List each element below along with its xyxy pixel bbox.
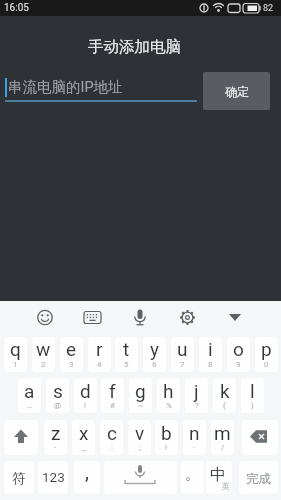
button[interactable] (242, 420, 278, 455)
staticText: 0 (264, 360, 269, 369)
staticText: q (10, 338, 21, 360)
staticText: 16:05 (4, 2, 29, 14)
staticText: 中 (210, 465, 226, 485)
staticText: y (150, 338, 159, 360)
staticText: ( (223, 401, 226, 410)
staticText: 7 (180, 360, 185, 369)
staticText: ! (165, 443, 168, 452)
staticText: ) (251, 401, 254, 410)
staticText: p (261, 338, 272, 360)
button[interactable]: 确定 (203, 72, 270, 110)
staticText: : (111, 443, 113, 452)
button[interactable]: 完成 (239, 461, 278, 494)
staticText: f (109, 380, 116, 402)
button[interactable]: x (72, 420, 95, 455)
staticText: 。 (185, 465, 200, 484)
button[interactable]: q (4, 337, 27, 372)
staticText: i (208, 338, 213, 360)
staticText: c (107, 422, 117, 444)
button[interactable] (31, 302, 59, 332)
staticText: # (110, 401, 115, 410)
staticText: 9 (236, 360, 241, 369)
button[interactable] (4, 420, 38, 455)
staticText: 完成 (246, 471, 271, 487)
button[interactable]: o (227, 337, 250, 372)
staticText: j (194, 380, 199, 402)
staticText: e (66, 338, 77, 360)
button[interactable]: m (211, 420, 234, 455)
button[interactable] (221, 302, 249, 332)
staticText: 8 (208, 360, 213, 369)
staticText: 5 (124, 360, 129, 369)
staticText: _ (82, 443, 86, 452)
staticText: z (51, 422, 61, 444)
button[interactable]: i (199, 337, 222, 372)
staticText: / (221, 443, 225, 452)
staticText: % (166, 401, 172, 410)
staticText: a (24, 380, 35, 402)
button[interactable]: t (115, 337, 138, 372)
staticText: u (177, 338, 188, 360)
button[interactable]: 123 (38, 461, 68, 494)
button[interactable] (126, 302, 154, 332)
staticText: t (123, 338, 130, 360)
button[interactable]: e (60, 337, 83, 372)
staticText: x (79, 422, 89, 444)
staticText: r (96, 338, 103, 360)
button[interactable]: h (157, 378, 180, 413)
staticText: h (163, 380, 174, 402)
staticText: m (214, 422, 231, 444)
button[interactable]: j (185, 378, 208, 413)
staticText: l (250, 380, 255, 402)
button[interactable]: c (100, 420, 123, 455)
button[interactable] (79, 302, 107, 332)
button[interactable]: k (213, 378, 236, 413)
staticText: d (80, 380, 91, 402)
button[interactable]: d (74, 378, 97, 413)
button[interactable]: 符 (4, 461, 34, 494)
staticText: 4 (97, 360, 102, 369)
staticText: w (36, 338, 51, 360)
button[interactable]: , (74, 461, 100, 494)
button[interactable]: f (101, 378, 124, 413)
button[interactable]: a (18, 378, 41, 413)
button[interactable]: u (171, 337, 194, 372)
staticText: … (27, 401, 33, 410)
staticText: o (233, 338, 244, 360)
staticText: ~ (138, 401, 144, 410)
button[interactable] (174, 302, 202, 332)
button[interactable]: s (46, 378, 69, 413)
button[interactable]: z (44, 420, 67, 455)
staticText: · (193, 443, 196, 452)
staticText: v (135, 422, 145, 444)
button[interactable]: b (155, 420, 178, 455)
staticText: 123 (42, 469, 65, 485)
staticText: b (161, 422, 172, 444)
staticText: ? (195, 401, 199, 410)
staticText: 英 (222, 481, 230, 491)
button[interactable]: w (32, 337, 55, 372)
button[interactable]: y (143, 337, 166, 372)
button[interactable]: l (241, 378, 264, 413)
staticText: k (220, 380, 230, 402)
button[interactable]: 中 (206, 461, 232, 494)
staticText: 串流电脑的IP地址 (8, 78, 123, 96)
staticText: g (135, 380, 146, 402)
staticText: @ (54, 401, 62, 410)
staticText: ; (139, 443, 141, 452)
button[interactable]: g (129, 378, 152, 413)
staticText: ! (84, 401, 87, 410)
staticText: 2 (41, 360, 46, 369)
button[interactable] (104, 461, 177, 494)
staticText: 82 (263, 3, 274, 14)
staticText: 手动添加电脑 (88, 37, 181, 56)
staticText: n (189, 422, 200, 444)
button[interactable]: p (255, 337, 278, 372)
staticText: 6 (152, 360, 157, 369)
staticText: 1 (13, 360, 18, 369)
button[interactable]: v (128, 420, 151, 455)
staticText: s (53, 380, 63, 402)
button[interactable]: n (183, 420, 206, 455)
button[interactable]: 。 (181, 461, 204, 494)
button[interactable]: r (88, 337, 111, 372)
